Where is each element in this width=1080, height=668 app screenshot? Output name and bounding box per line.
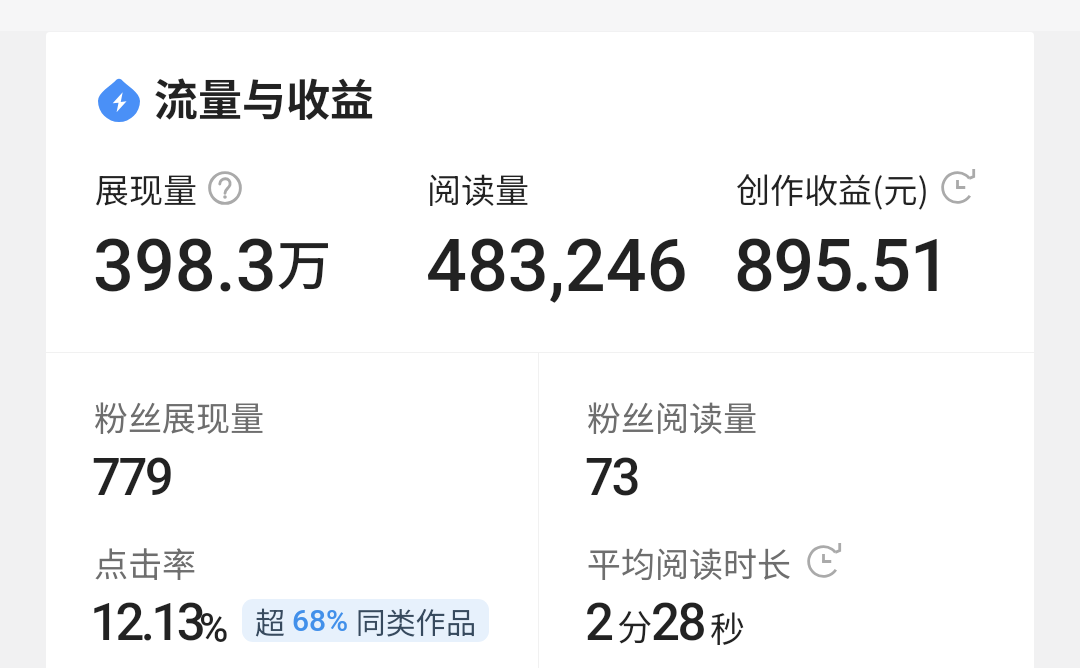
staticText: %	[199, 605, 229, 652]
other: History	[941, 171, 974, 204]
staticText: 流量与收益	[154, 65, 374, 129]
staticText: 粉丝展现量	[94, 392, 264, 441]
staticText: 28	[651, 593, 704, 653]
button[interactable]: 创作收益(元)	[736, 164, 974, 213]
staticText: 分	[617, 599, 653, 650]
other: Traffic and revenue	[98, 78, 140, 122]
button[interactable]: Traffic and revenue	[96, 65, 374, 129]
staticText: 点击率	[94, 538, 196, 587]
staticText: 秒	[710, 601, 746, 652]
staticText: 895.51	[734, 224, 950, 308]
other: History	[807, 545, 840, 578]
staticText: 779	[92, 448, 172, 508]
button[interactable]: 超	[242, 599, 489, 642]
staticText: 展现量	[95, 164, 197, 213]
button[interactable]: 阅读量	[427, 164, 529, 213]
staticText: 同类作品	[349, 599, 476, 642]
staticText: 2	[585, 593, 612, 653]
staticText: 创作收益(元)	[736, 164, 929, 213]
button[interactable]: 点击率	[94, 538, 196, 587]
staticText: 68%	[292, 603, 349, 638]
staticText: 12.13	[90, 593, 203, 653]
button[interactable]: 粉丝展现量	[94, 392, 264, 441]
staticText: 398.3	[93, 224, 277, 308]
staticText: 万	[277, 222, 331, 300]
staticText: 平均阅读时长	[587, 538, 791, 587]
staticText: 483,246	[426, 224, 688, 308]
button[interactable]: 平均阅读时长	[587, 538, 840, 587]
staticText: 73	[585, 448, 638, 508]
other: Help	[208, 171, 242, 205]
staticText: 粉丝阅读量	[587, 392, 757, 441]
staticText: 阅读量	[427, 164, 529, 213]
staticText: 超	[255, 599, 292, 642]
button[interactable]: 粉丝阅读量	[587, 392, 757, 441]
button[interactable]: 展现量	[95, 164, 242, 213]
